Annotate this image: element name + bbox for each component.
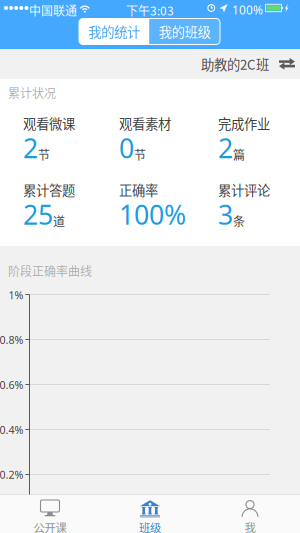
button[interactable]: 我 (200, 495, 300, 533)
staticText: 100% (119, 197, 186, 232)
staticText: 中国联通 (29, 1, 77, 19)
staticText: 道 (53, 212, 65, 230)
staticText: 我的班级 (159, 22, 211, 41)
staticText: 班级 (139, 519, 161, 533)
staticText: 阶段正确率曲线 (8, 262, 92, 279)
staticText: 累计状况 (8, 84, 56, 101)
staticText: 下午3:03 (126, 1, 174, 19)
staticText: 0 (119, 130, 134, 166)
staticText: 0.4% (0, 423, 23, 437)
staticText: 25 (23, 197, 53, 232)
staticText: 3 (218, 197, 233, 232)
staticText: 0.8% (0, 333, 23, 347)
staticText: 0.2% (0, 468, 23, 482)
staticText: 我 (244, 519, 255, 533)
staticText: 2 (23, 130, 38, 166)
staticText: 累计答题 (23, 180, 75, 199)
staticText: 助教的2C班 (201, 54, 269, 74)
staticText: 0.6% (0, 378, 23, 392)
staticText: 篇 (233, 146, 245, 163)
staticText: 2 (218, 130, 233, 166)
staticText: 1% (8, 288, 23, 302)
button[interactable]: 我的统计 (79, 18, 149, 44)
staticText: 累计评论 (218, 180, 270, 199)
button[interactable]: 班级 (100, 495, 200, 533)
staticText: 节 (38, 146, 50, 163)
staticText: 我的统计 (88, 22, 140, 41)
button[interactable]: 我的班级 (149, 18, 220, 44)
button[interactable]: 公开课 (0, 495, 100, 533)
staticText: 条 (233, 212, 245, 230)
staticText: 公开课 (33, 519, 66, 533)
staticText: 观看素材 (119, 113, 171, 133)
staticText: 节 (134, 146, 146, 163)
staticText: 100% (232, 2, 263, 18)
staticText: 正确率 (119, 180, 158, 199)
staticText: 观看微课 (23, 113, 75, 133)
button[interactable]: 助教的2C班 (0, 49, 300, 79)
staticText: 完成作业 (218, 113, 270, 133)
